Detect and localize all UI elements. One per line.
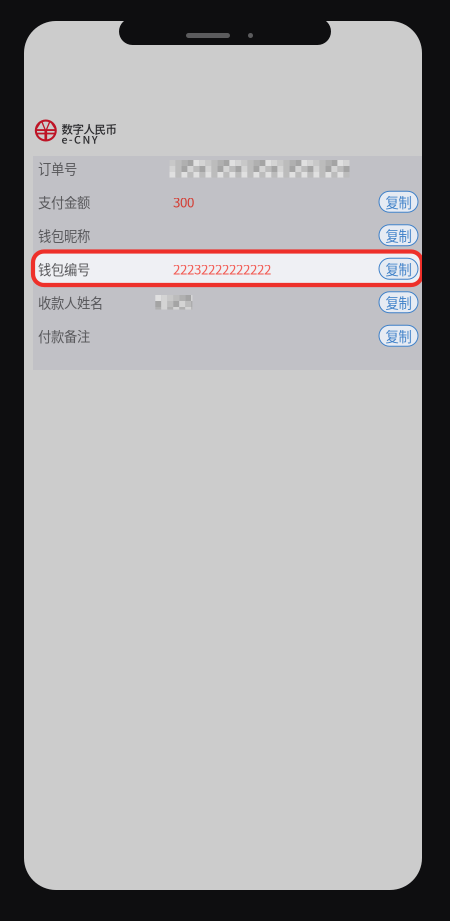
staticText: 300 [173,192,194,211]
staticText: 收款人姓名 [38,293,103,312]
staticText: 复制 [385,259,411,278]
staticText: 复制 [385,192,411,211]
staticText: 支付金额 [38,192,90,211]
button[interactable]: 复制 [379,325,418,346]
button[interactable]: 复制 [379,292,418,313]
staticText: 22232222222222 [173,259,271,278]
staticText: 复制 [385,293,411,312]
staticText: 复制 [385,226,411,245]
staticText: 钱包昵称 [38,226,90,245]
staticText: 钱包编号 [38,259,90,278]
button[interactable]: 复制 [379,191,418,212]
button[interactable]: 复制 [379,225,418,246]
staticText: 复制 [385,326,411,345]
button[interactable]: 复制 [379,258,418,279]
staticText: 付款备注 [38,326,90,345]
staticText: 订单号 [38,159,77,178]
staticText: 数字人民币 [61,120,116,137]
staticText: e-CNY [61,131,98,147]
